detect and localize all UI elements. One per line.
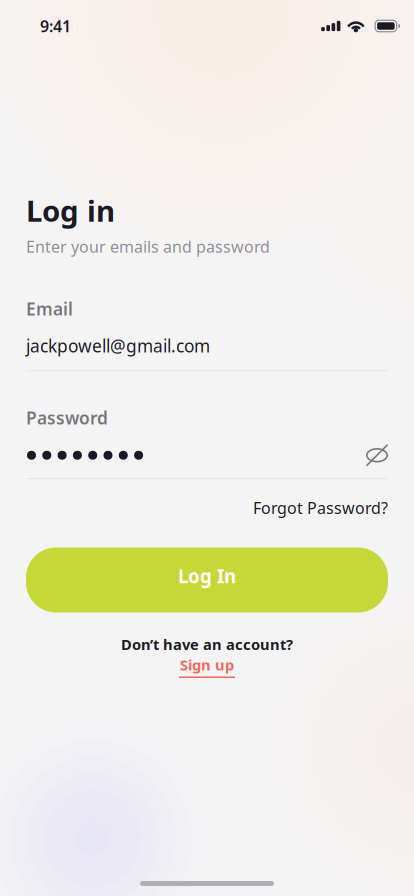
button[interactable]: Show password [366,445,388,465]
staticText: Don’t have an account? [121,634,293,654]
button[interactable]: Sign up [179,655,235,678]
staticText: jackpowell@gmail.com [26,334,210,357]
staticText: Log In [178,564,236,588]
staticText: Forgot Password? [253,497,388,518]
button[interactable]: Log In [26,547,388,612]
staticText: Password [26,406,108,429]
button[interactable]: Forgot Password? [253,497,388,518]
staticText: Enter your emails and password [26,236,270,257]
staticText: Email [26,297,73,320]
staticText: 9:41 [40,15,71,37]
staticText: Log in [26,191,115,230]
staticText: Sign up [180,655,234,674]
